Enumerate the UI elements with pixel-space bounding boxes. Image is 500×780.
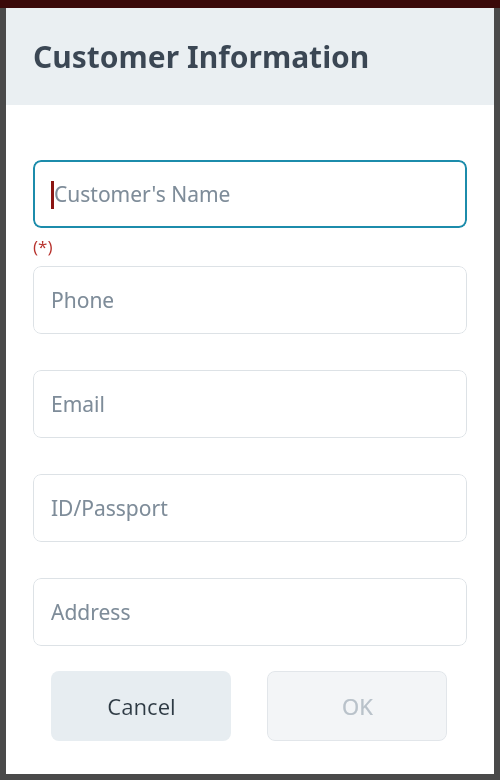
- button[interactable]: Phone: [33, 266, 467, 334]
- button[interactable]: Address: [33, 578, 467, 646]
- button[interactable]: Cancel: [51, 671, 231, 741]
- staticText: Address: [51, 598, 131, 627]
- staticText: ID/Passport: [51, 494, 168, 523]
- staticText: Phone: [51, 286, 115, 315]
- staticText: Customer Information: [33, 36, 370, 77]
- staticText: Email: [51, 390, 105, 419]
- staticText: OK: [342, 691, 373, 721]
- staticText: (*): [33, 235, 53, 258]
- staticText: Cancel: [107, 691, 176, 721]
- button[interactable]: ID/Passport: [33, 474, 467, 542]
- button[interactable]: Email: [33, 370, 467, 438]
- staticText: Customer's Name: [54, 180, 231, 209]
- button[interactable]: OK: [267, 671, 447, 741]
- button[interactable]: Customer's Name: [33, 160, 467, 228]
